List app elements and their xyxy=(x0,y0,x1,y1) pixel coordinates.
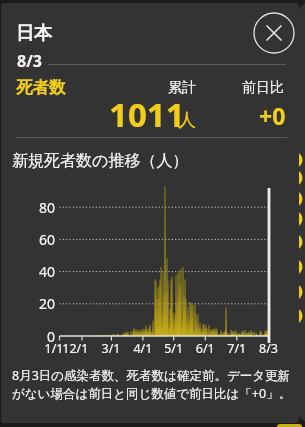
staticText: 死者数 xyxy=(16,77,66,98)
staticText: 8/3 xyxy=(17,50,42,72)
staticText: 累計 xyxy=(168,79,196,97)
button[interactable]: Close xyxy=(252,11,296,55)
staticText: 日本 xyxy=(16,22,52,45)
staticText: 新規死者数の推移（人） xyxy=(12,151,189,171)
staticText: +0 xyxy=(259,100,286,131)
staticText: 前日比 xyxy=(242,79,284,97)
staticText: 1011 xyxy=(109,92,185,137)
staticText: がない場合は前日と同じ数値で前日比は「+0」。 xyxy=(12,385,292,402)
staticText: 人 xyxy=(178,109,196,132)
staticText: 8月3日の感染者数、死者数は確定前。データ更新 xyxy=(12,367,290,384)
